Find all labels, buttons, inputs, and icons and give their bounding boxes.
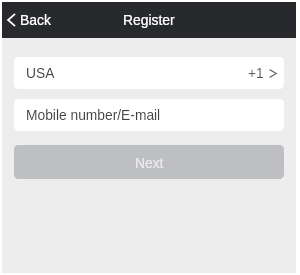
staticText: +1	[248, 66, 264, 81]
button[interactable]: Next	[14, 145, 284, 179]
button[interactable]: USA	[14, 57, 284, 89]
staticText: USA	[26, 66, 55, 81]
staticText: Register	[123, 12, 175, 28]
staticText: Next	[135, 156, 164, 171]
staticText: Mobile number/E-mail	[26, 108, 161, 123]
other: Choose country code	[269, 69, 277, 78]
button[interactable]: Mobile number/E-mail	[14, 99, 284, 131]
button[interactable]: Back	[2, 6, 59, 34]
staticText: Back	[20, 12, 51, 28]
